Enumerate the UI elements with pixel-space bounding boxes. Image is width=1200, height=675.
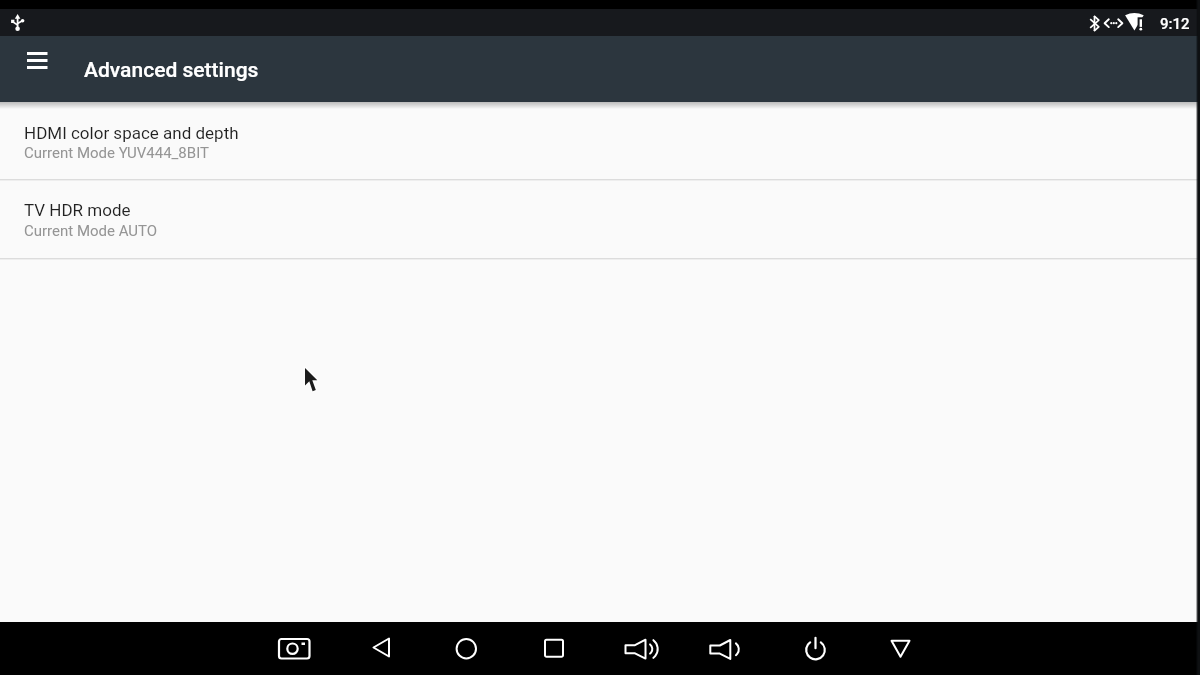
staticText: Current Mode YUV444_8BIT — [24, 144, 209, 162]
staticText: HDMI color space and depth — [24, 123, 239, 143]
staticText: Current Mode AUTO — [24, 222, 158, 240]
staticText: Advanced settings — [84, 58, 259, 83]
staticText: TV HDR mode — [24, 200, 131, 220]
staticText: 9:12 — [1160, 15, 1190, 33]
